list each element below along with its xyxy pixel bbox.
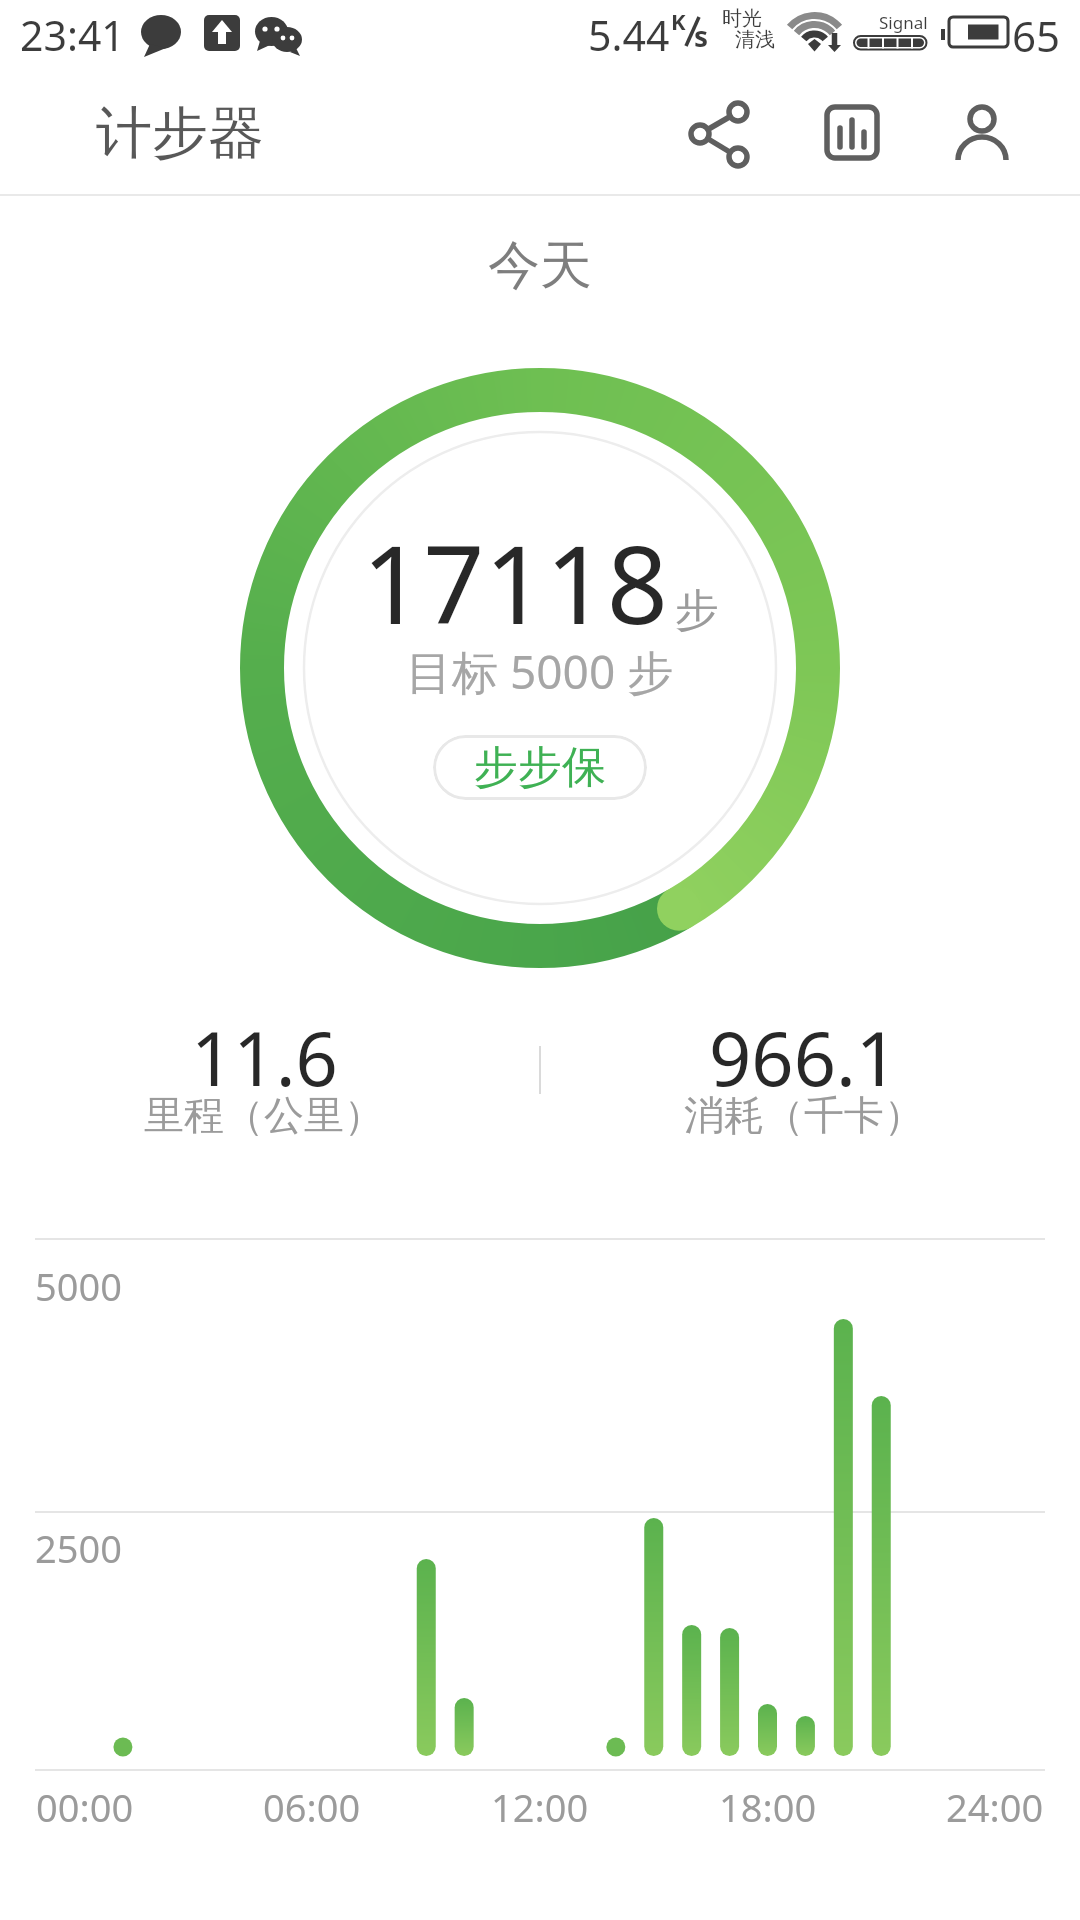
- staticText: 清浅: [735, 27, 775, 52]
- button[interactable]: [799, 80, 903, 184]
- staticText: 966.1: [709, 1007, 899, 1108]
- staticText: 5.44: [588, 7, 670, 63]
- staticText: 目标 5000 步: [406, 640, 674, 703]
- staticText: 17118: [362, 510, 669, 656]
- staticText: 06:00: [263, 1781, 361, 1833]
- button[interactable]: 步步保: [433, 735, 647, 800]
- staticText: 时光: [722, 6, 762, 31]
- staticText: 今天: [488, 233, 592, 299]
- staticText: 2500: [35, 1522, 122, 1574]
- staticText: 12:00: [491, 1781, 589, 1833]
- staticText: 步: [675, 583, 719, 638]
- staticText: 00:00: [36, 1781, 134, 1833]
- staticText: 里程（公里）: [144, 1090, 384, 1140]
- staticText: 消耗（千卡）: [684, 1090, 924, 1140]
- staticText: 步步保: [474, 740, 606, 795]
- staticText: Signal: [879, 11, 928, 34]
- staticText: 65: [1012, 7, 1061, 64]
- staticText: 23:41: [20, 7, 125, 63]
- staticText: s: [694, 17, 709, 55]
- staticText: 计步器: [96, 98, 264, 169]
- button[interactable]: [930, 80, 1034, 184]
- staticText: 5000: [35, 1260, 122, 1312]
- staticText: 18:00: [719, 1781, 817, 1833]
- staticText: 11.6: [191, 1007, 338, 1108]
- staticText: 24:00: [946, 1781, 1044, 1833]
- button[interactable]: [667, 80, 771, 184]
- staticText: K: [671, 6, 686, 36]
